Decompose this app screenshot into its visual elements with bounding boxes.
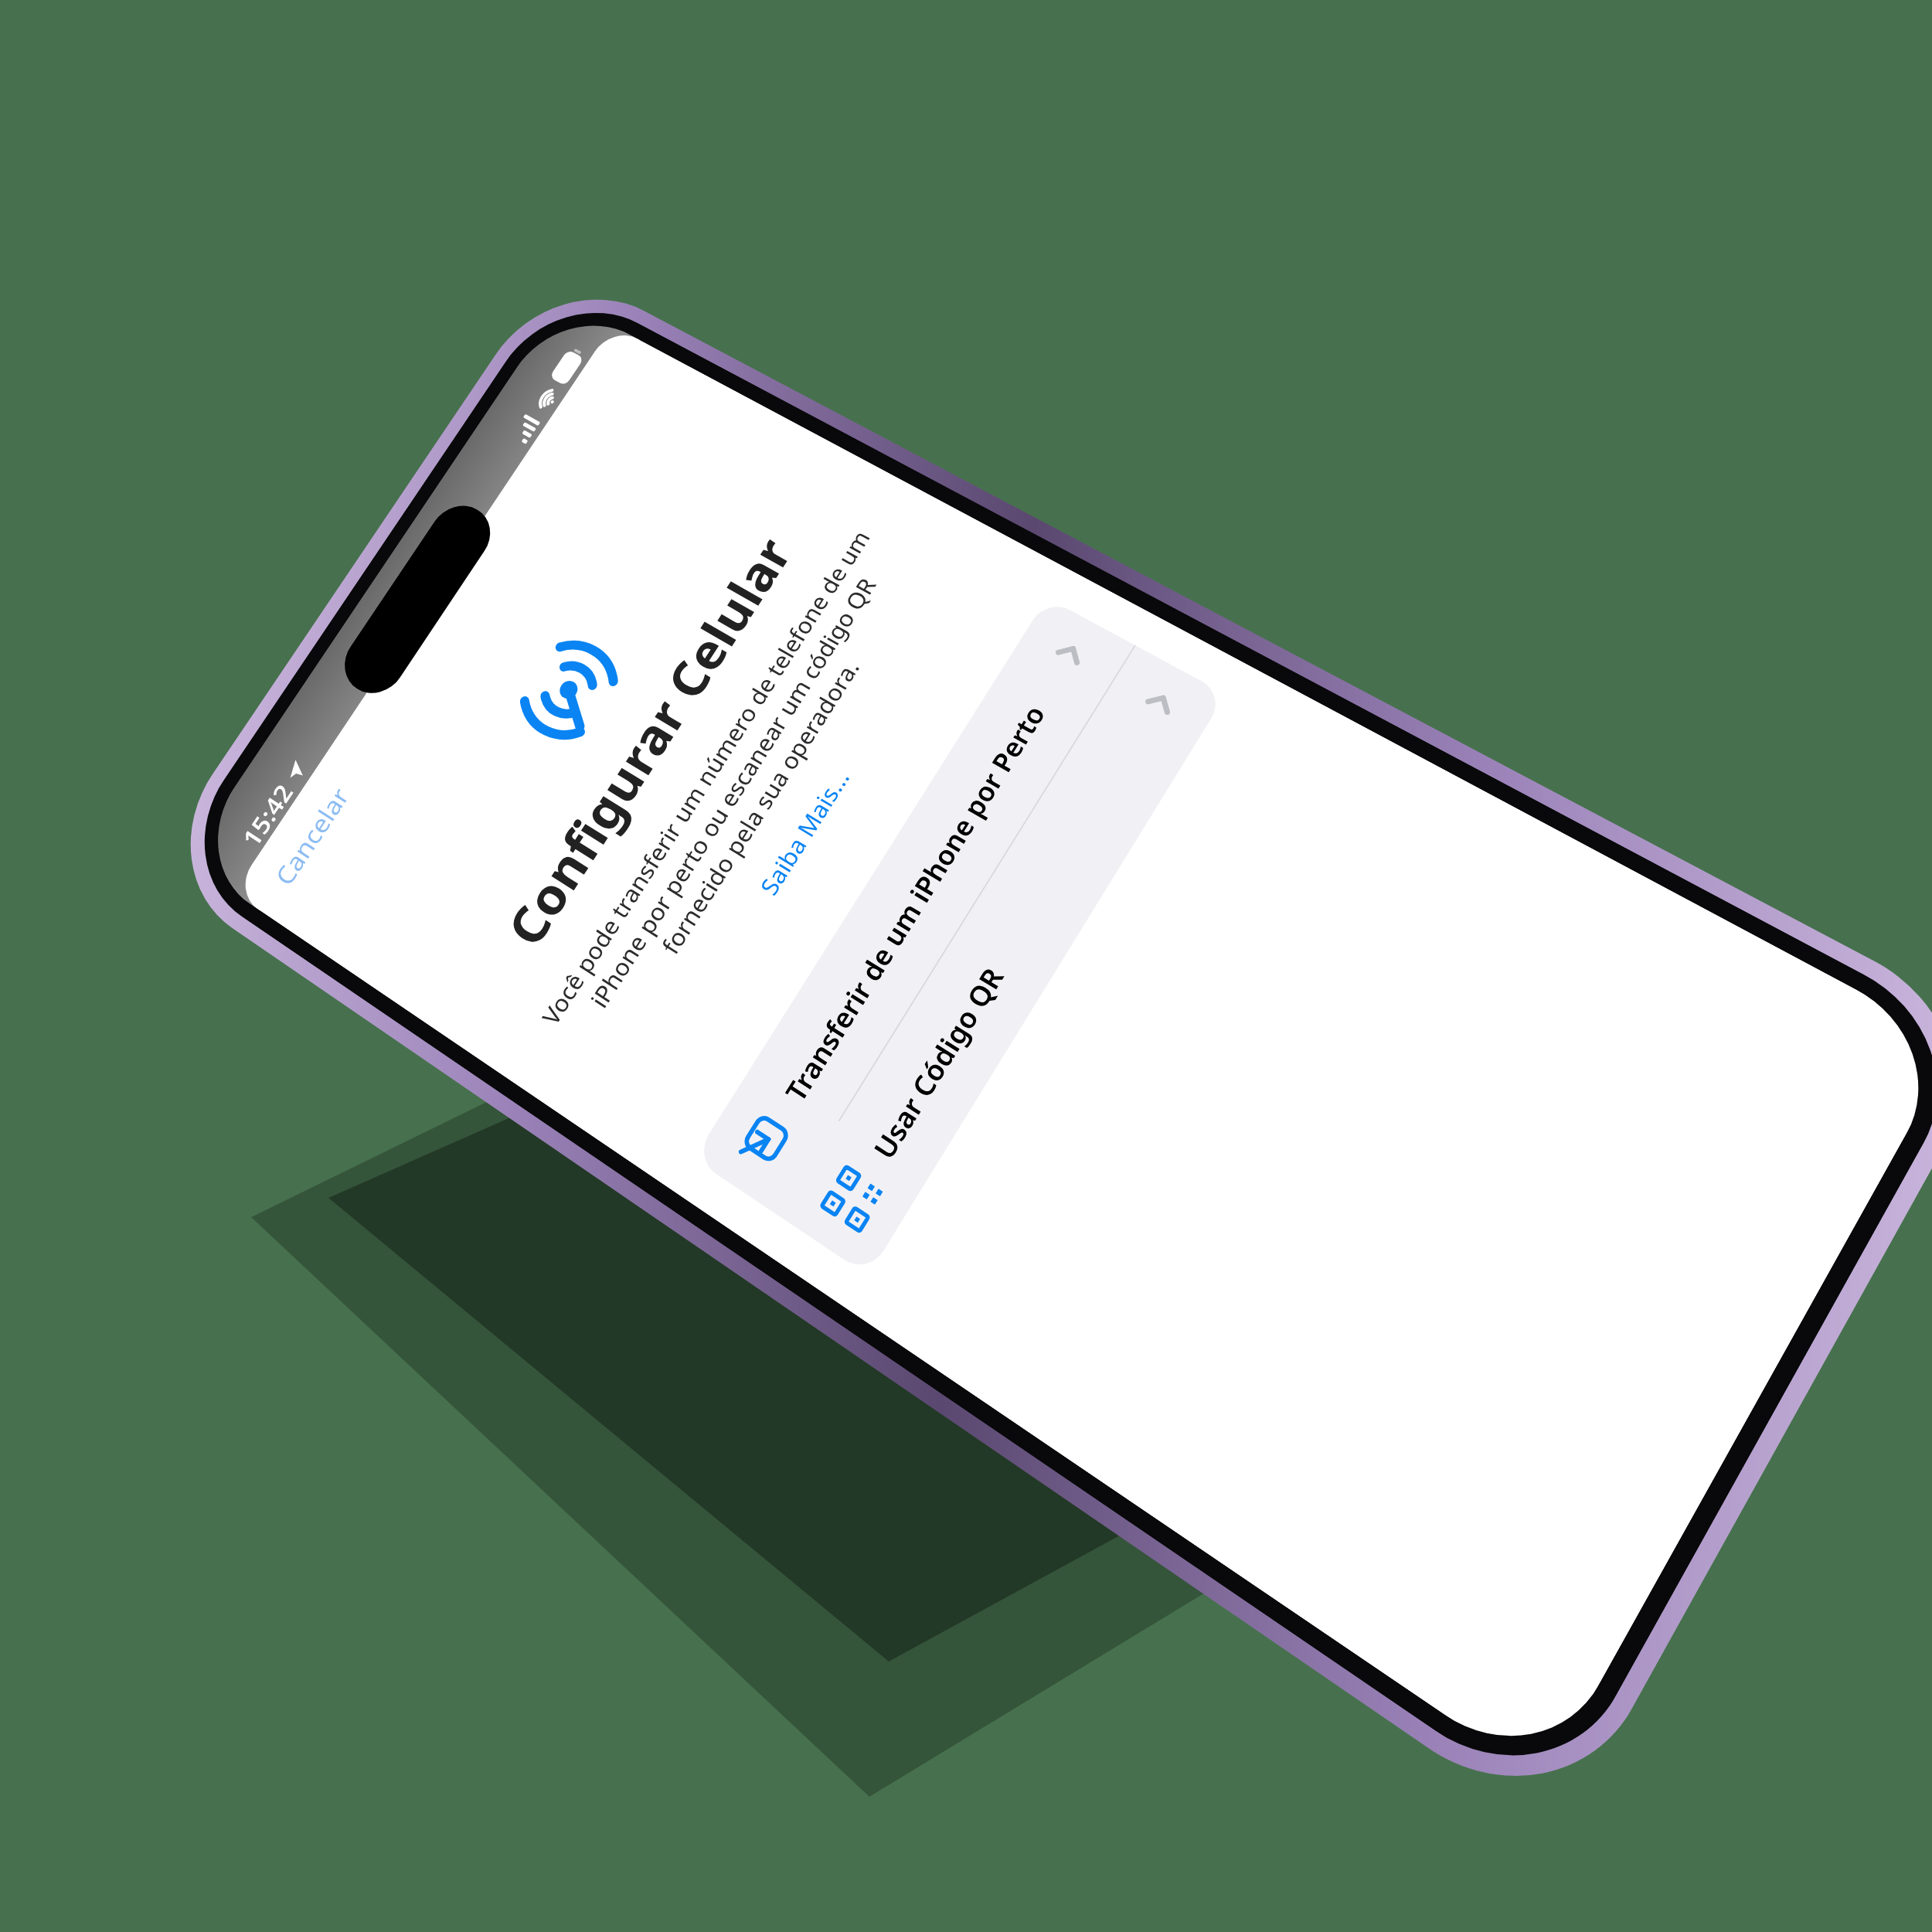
other: Cellular — [510, 629, 630, 753]
staticText: Transferir de um iPhone por Perto — [777, 652, 1082, 1108]
staticText: Usar Código QR — [864, 701, 1172, 1166]
button[interactable]: Saiba Mais... — [743, 755, 866, 911]
staticText: Configurar Celular — [426, 431, 869, 1061]
staticText: Você pode transferir um número de telefo… — [527, 513, 938, 1079]
staticText: Saiba Mais... — [753, 764, 857, 901]
other: QR code icon — [820, 1165, 886, 1233]
staticText: Cancelar — [267, 781, 356, 891]
button[interactable]: Transfer icon — [693, 597, 1135, 1216]
button[interactable]: QR code icon — [780, 645, 1226, 1276]
button[interactable]: Cancelar — [233, 755, 373, 925]
other: Transfer icon — [733, 1107, 797, 1174]
staticText: 15:42 — [235, 778, 300, 853]
